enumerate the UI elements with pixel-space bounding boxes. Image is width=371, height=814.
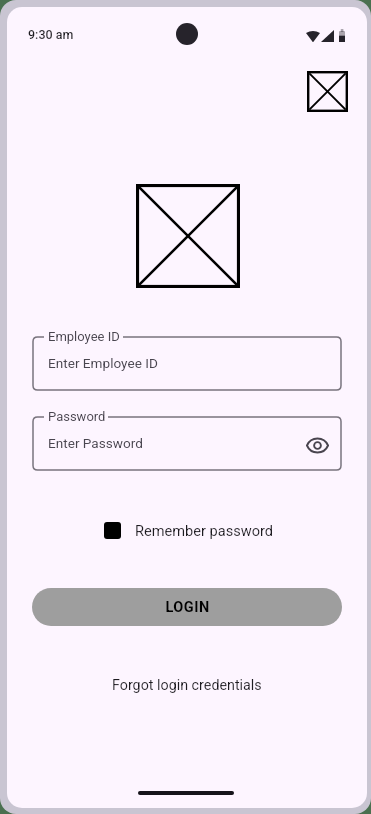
button[interactable]: LOGIN <box>32 588 342 626</box>
staticText: Forgot login credentials <box>112 677 262 694</box>
staticText: Remember password <box>135 522 274 539</box>
staticText: Password <box>48 409 106 424</box>
staticText: Enter Password <box>48 435 143 451</box>
staticText: LOGIN <box>165 599 210 616</box>
button[interactable]: Forgot login credentials <box>104 674 270 697</box>
staticText: 9:30 am <box>28 27 74 42</box>
staticText: Employee ID <box>48 329 120 344</box>
button[interactable]: Remember password <box>104 519 274 542</box>
staticText: Enter Employee ID <box>48 355 158 371</box>
button[interactable]: Show password <box>301 429 333 461</box>
